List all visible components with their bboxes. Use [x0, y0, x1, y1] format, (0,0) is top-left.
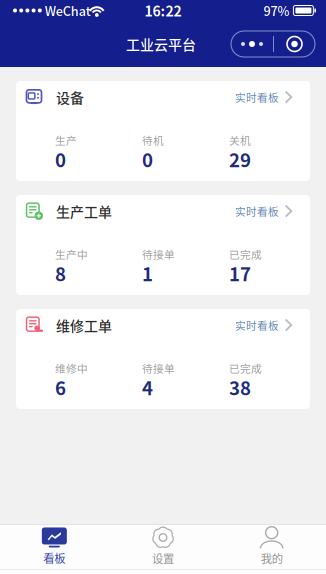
button[interactable]: More options	[231, 31, 315, 57]
staticText: 工业云平台	[126, 34, 196, 54]
staticText: 实时看板	[235, 203, 279, 219]
staticText: 38	[229, 374, 251, 401]
staticText: 待接单	[142, 360, 175, 376]
staticText: 待接单	[142, 246, 175, 262]
staticText: 实时看板	[235, 89, 279, 105]
staticText: 生产	[55, 132, 77, 148]
staticText: 设备	[56, 87, 84, 107]
staticText: 已完成	[229, 360, 262, 376]
staticText: 16:22	[144, 0, 181, 21]
button[interactable]: 我的	[217, 524, 326, 569]
staticText: 实时看板	[235, 317, 279, 333]
staticText: 设置	[152, 550, 174, 566]
staticText: 8	[55, 260, 66, 287]
button[interactable]: 实时看板	[235, 315, 293, 335]
staticText: 我的	[261, 550, 283, 566]
button[interactable]: 看板	[0, 524, 109, 569]
staticText: 看板	[43, 549, 65, 566]
staticText: 1	[142, 260, 153, 287]
staticText: 17	[229, 260, 251, 287]
button[interactable]: 实时看板	[235, 87, 293, 107]
staticText: 0	[55, 146, 66, 173]
staticText: 维修工单	[56, 315, 112, 335]
staticText: 关机	[229, 132, 251, 148]
staticText: 29	[229, 146, 251, 173]
staticText: 6	[55, 374, 66, 401]
staticText: 97%	[263, 1, 289, 20]
staticText: WeChat	[42, 1, 91, 20]
staticText: 待机	[142, 132, 164, 148]
button[interactable]: 设置	[109, 524, 217, 569]
staticText: 生产工单	[56, 201, 112, 221]
staticText: 维修中	[55, 360, 88, 376]
staticText: 0	[142, 146, 153, 173]
staticText: 4	[142, 374, 153, 401]
staticText: 已完成	[229, 246, 262, 262]
staticText: 生产中	[55, 246, 88, 262]
button[interactable]: 实时看板	[235, 201, 293, 221]
